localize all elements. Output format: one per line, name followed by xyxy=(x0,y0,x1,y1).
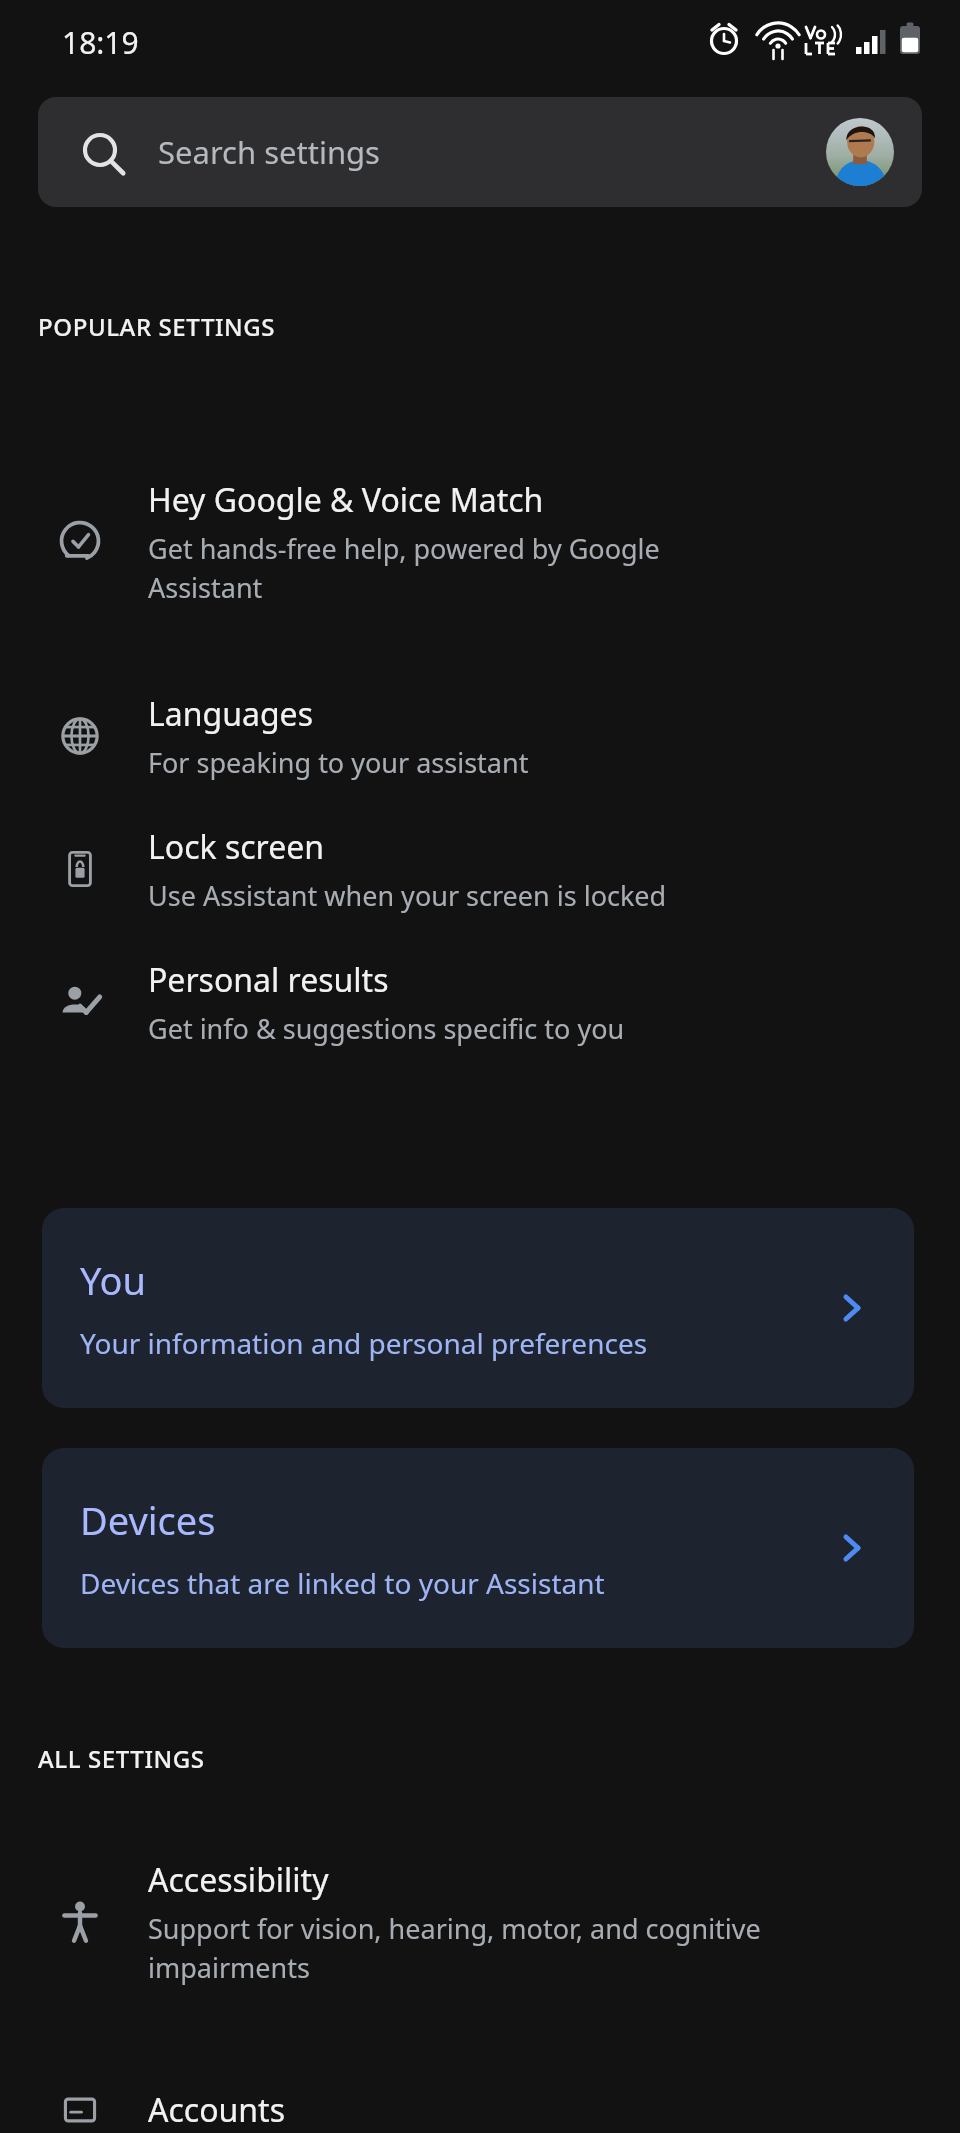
button[interactable]: Hey Google & Voice Match xyxy=(0,440,960,644)
staticText: Personal results xyxy=(148,958,389,1002)
button[interactable]: Search settings xyxy=(38,97,922,207)
staticText: Use Assistant when your screen is locked xyxy=(148,877,667,914)
staticText: Get hands-free help, powered by Google A… xyxy=(148,530,660,606)
staticText: Lock screen xyxy=(148,825,325,869)
button[interactable]: You xyxy=(42,1208,914,1408)
staticText: Hey Google & Voice Match xyxy=(148,478,544,522)
button[interactable]: Languages xyxy=(0,660,960,812)
staticText: Get info & suggestions specific to you xyxy=(148,1010,625,1047)
staticText: Accessibility xyxy=(148,1858,329,1902)
staticText: ALL SETTINGS xyxy=(38,1742,205,1775)
staticText: Your information and personal preference… xyxy=(80,1324,648,1362)
button[interactable]: Personal results xyxy=(0,926,960,1078)
staticText: Search settings xyxy=(158,131,380,173)
staticText: Support for vision, hearing, motor, and … xyxy=(148,1910,761,1986)
staticText: Devices xyxy=(80,1494,216,1546)
button[interactable]: Devices xyxy=(42,1448,914,1648)
staticText: Devices that are linked to your Assistan… xyxy=(80,1564,605,1602)
button[interactable]: Account xyxy=(826,118,894,186)
staticText: For speaking to your assistant xyxy=(148,744,529,781)
button[interactable]: Accounts xyxy=(0,2060,960,2133)
staticText: 18:19 xyxy=(62,22,139,63)
staticText: POPULAR SETTINGS xyxy=(38,310,276,343)
staticText: Languages xyxy=(148,692,313,736)
button[interactable]: Accessibility xyxy=(0,1820,960,2024)
staticText: You xyxy=(80,1254,147,1306)
button[interactable]: Lock screen xyxy=(0,793,960,945)
staticText: Accounts xyxy=(148,2088,285,2132)
